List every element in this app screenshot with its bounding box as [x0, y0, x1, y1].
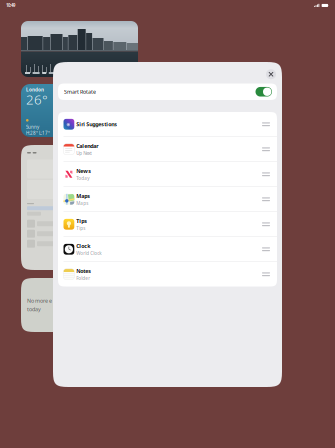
button[interactable]: Notes — [58, 262, 277, 286]
staticText: Up Next — [76, 150, 92, 156]
staticText: Sunny — [26, 124, 39, 130]
staticText: 10:49 — [6, 2, 15, 8]
staticText: Clock — [76, 242, 90, 249]
staticText: Folder — [76, 275, 90, 281]
staticText: London — [26, 86, 44, 93]
button[interactable]: News — [58, 162, 277, 187]
staticText: Today — [76, 175, 89, 181]
staticText: Siri Suggestions — [76, 121, 117, 128]
staticText: 26° — [26, 90, 48, 109]
button[interactable]: Siri Suggestions — [58, 112, 277, 137]
staticText: Maps — [76, 200, 88, 206]
button[interactable]: Maps — [58, 187, 277, 212]
staticText: World Clock — [76, 250, 101, 256]
staticText: Maps — [76, 192, 90, 199]
button[interactable]: Clock — [58, 237, 277, 262]
staticText: Tips — [76, 217, 87, 224]
staticText: Calendar — [76, 142, 98, 149]
staticText: today — [27, 306, 41, 313]
button[interactable]: Close — [263, 66, 279, 82]
button[interactable]: Tips — [58, 212, 277, 237]
button[interactable]: Calendar — [58, 137, 277, 162]
staticText: H:28° L:17° — [26, 130, 50, 136]
staticText: Notes — [76, 267, 91, 274]
button[interactable]: Smart Rotate — [58, 83, 277, 100]
staticText: News — [76, 167, 91, 174]
staticText: Tips — [76, 225, 85, 231]
staticText: No more e — [27, 297, 52, 304]
staticText: Smart Rotate — [64, 88, 96, 95]
